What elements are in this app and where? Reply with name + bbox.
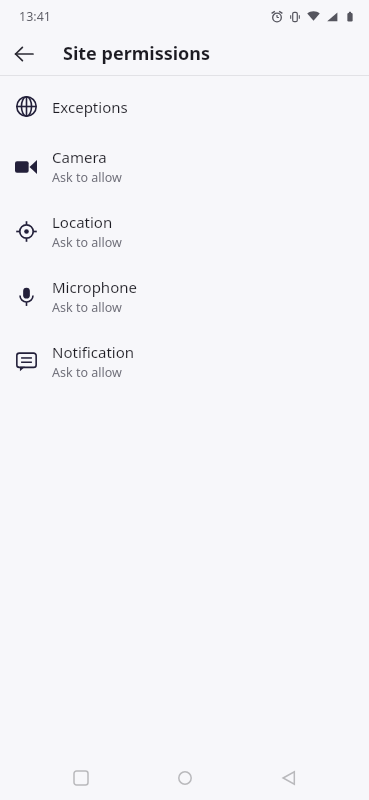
- staticText: Location: [52, 212, 113, 232]
- staticText: Notification: [52, 342, 135, 362]
- staticText: Exceptions: [52, 97, 128, 117]
- button[interactable]: Notification: [0, 329, 369, 394]
- staticText: 13:41: [19, 8, 51, 25]
- button[interactable]: Back: [0, 32, 48, 75]
- staticText: Camera: [52, 147, 107, 167]
- button[interactable]: Location: [0, 199, 369, 264]
- staticText: Ask to allow: [52, 299, 122, 316]
- staticText: Site permissions: [63, 41, 211, 66]
- button[interactable]: Back: [265, 755, 313, 800]
- staticText: Ask to allow: [52, 364, 122, 381]
- staticText: Ask to allow: [52, 169, 122, 186]
- staticText: Ask to allow: [52, 234, 122, 251]
- button[interactable]: Microphone: [0, 264, 369, 329]
- button[interactable]: Camera: [0, 134, 369, 199]
- staticText: Microphone: [52, 277, 137, 297]
- button[interactable]: Home: [161, 755, 209, 800]
- button[interactable]: Recents: [57, 755, 105, 800]
- button[interactable]: Exceptions: [0, 79, 369, 134]
